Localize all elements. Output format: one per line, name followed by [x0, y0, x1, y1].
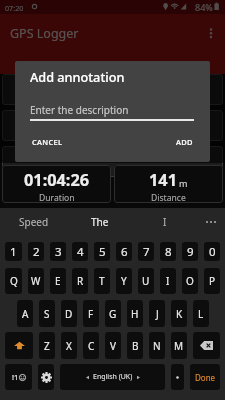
staticText: 8	[165, 244, 172, 260]
button[interactable]: 141	[114, 165, 223, 203]
staticText: E	[55, 274, 61, 288]
button[interactable]: 6	[116, 242, 132, 261]
staticText: Add annotation	[30, 68, 125, 85]
staticText: Speed	[19, 215, 49, 229]
staticText: Y	[121, 274, 127, 288]
staticText: O	[186, 274, 194, 288]
button[interactable]: ADD	[169, 132, 200, 152]
button[interactable]: B	[127, 332, 143, 359]
button[interactable]: L	[193, 300, 209, 327]
button[interactable]: O	[182, 268, 198, 294]
staticText: A	[22, 307, 29, 321]
button[interactable]: Done	[190, 364, 220, 390]
button[interactable]: Q	[5, 268, 22, 294]
button[interactable]: I	[132, 208, 197, 236]
staticText: 6	[121, 244, 128, 260]
button[interactable]: W	[28, 268, 44, 294]
button[interactable]: G	[105, 300, 121, 327]
button[interactable]: 4	[72, 242, 88, 261]
button[interactable]: Settings	[38, 364, 54, 390]
staticText: R	[77, 274, 84, 288]
button[interactable]: H	[127, 300, 143, 327]
staticText: 9	[187, 244, 194, 260]
button[interactable]: F	[83, 300, 99, 327]
staticText: J	[156, 307, 159, 321]
button[interactable]: R	[72, 268, 88, 294]
button[interactable]: CANCEL	[25, 132, 70, 152]
staticText: 0	[209, 244, 216, 260]
staticText: G	[109, 307, 117, 321]
staticText: Z	[44, 339, 50, 353]
button[interactable]: J	[149, 300, 165, 327]
button[interactable]: Period	[171, 364, 184, 390]
button[interactable]: S	[39, 300, 55, 327]
button[interactable]: N	[149, 332, 165, 359]
staticText: P	[209, 274, 216, 288]
staticText: Enter the description	[30, 103, 129, 117]
staticText: C	[88, 339, 95, 353]
button[interactable]: E	[50, 268, 66, 294]
button[interactable]: 01:04:26	[2, 165, 111, 203]
button[interactable]: 1	[5, 242, 22, 261]
button[interactable]: The	[67, 208, 132, 236]
button[interactable]: Z	[39, 332, 55, 359]
staticText: B	[132, 339, 139, 353]
staticText: I	[163, 215, 167, 229]
button[interactable]: C	[83, 332, 99, 359]
staticText: GPS Logger	[10, 25, 79, 42]
button[interactable]: A	[17, 300, 33, 327]
button[interactable]: 0	[204, 242, 220, 261]
staticText: L	[198, 307, 204, 321]
staticText: m	[179, 177, 188, 189]
staticText: U	[142, 274, 150, 288]
staticText: 1	[10, 244, 17, 260]
button[interactable]: 3	[50, 242, 66, 261]
staticText: F	[88, 307, 94, 321]
button[interactable]: X	[61, 332, 77, 359]
button[interactable]: Shift	[5, 332, 33, 359]
staticText: Duration	[39, 192, 75, 203]
staticText: 07:20	[5, 3, 24, 13]
button[interactable]: 8	[160, 242, 176, 261]
staticText: T	[99, 274, 105, 288]
staticText: N	[153, 339, 161, 353]
button[interactable]: Y	[116, 268, 132, 294]
staticText: English (UK)	[93, 372, 133, 382]
button[interactable]: More suggestions	[197, 208, 225, 236]
button[interactable]: Speed	[0, 208, 67, 236]
staticText: 01:04:26	[24, 169, 90, 191]
staticText: 5	[99, 244, 106, 260]
staticText: 84%	[195, 1, 213, 13]
button[interactable]: Backspace	[193, 332, 220, 359]
button[interactable]: 7	[138, 242, 154, 261]
staticText: CANCEL	[32, 137, 63, 147]
staticText: I	[166, 274, 170, 288]
button[interactable]: I	[160, 268, 176, 294]
staticText: H	[131, 307, 139, 321]
button[interactable]: K	[171, 300, 187, 327]
button[interactable]: More options	[199, 21, 223, 45]
staticText: ADD	[176, 137, 193, 147]
staticText: 2	[33, 244, 40, 260]
staticText: D	[65, 307, 73, 321]
staticText: 4	[77, 244, 84, 260]
staticText: 141	[149, 169, 177, 191]
button[interactable]: D	[61, 300, 77, 327]
button[interactable]: 5	[94, 242, 110, 261]
staticText: 3	[55, 244, 62, 260]
button[interactable]: 2	[28, 242, 44, 261]
staticText: Q	[10, 274, 18, 288]
button[interactable]: P	[204, 268, 220, 294]
button[interactable]: Symbols	[5, 364, 32, 390]
staticText: 7	[143, 244, 150, 260]
button[interactable]: Space	[60, 364, 165, 390]
button[interactable]: 9	[182, 242, 198, 261]
button[interactable]: T	[94, 268, 110, 294]
staticText: M	[174, 339, 184, 353]
button[interactable]: V	[105, 332, 121, 359]
staticText: Distance	[151, 192, 186, 203]
button[interactable]: M	[171, 332, 187, 359]
staticText: The	[91, 215, 109, 229]
staticText: S	[44, 307, 50, 321]
button[interactable]: U	[138, 268, 154, 294]
